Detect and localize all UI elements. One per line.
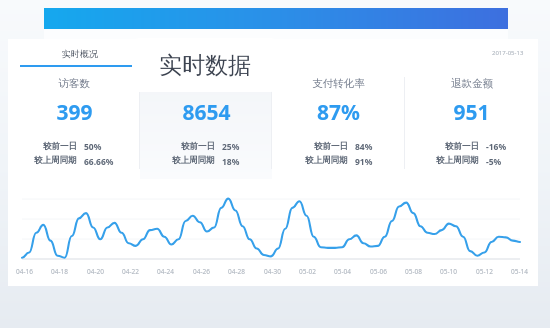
staticText: 04-30 [264,267,281,276]
staticText: 05-14 [511,267,528,276]
staticText: 经营概况 [233,49,261,58]
staticText: 66.66% [84,156,114,168]
staticText: 较前一日 [181,141,215,152]
staticText: 50% [84,141,102,153]
staticText: 较前一日 [445,141,479,152]
staticText: -5% [486,156,502,168]
staticText: 25% [222,141,240,153]
staticText: 04-28 [228,267,245,276]
staticText: 较上周同期 [436,155,479,166]
button[interactable]: 访客数 [8,67,140,179]
staticText: 支付转化率 [312,77,365,90]
staticText: 05-02 [299,267,316,276]
staticText: -16% [486,141,507,153]
button[interactable]: 实时数据 [132,38,278,92]
button[interactable]: 实时概况 [20,39,140,67]
staticText: 951 [453,98,490,127]
staticText: 退款金额 [451,77,493,90]
staticText: 05-06 [370,267,387,276]
staticText: 399 [56,98,93,127]
staticText: 04-24 [157,267,174,276]
staticText: 04-22 [122,267,139,276]
button[interactable]: 支付金额 [140,67,272,179]
staticText: 实时数据 [159,51,251,80]
staticText: 91% [355,156,373,168]
button[interactable]: 退款金额 [405,67,538,179]
staticText: 87% [317,98,360,127]
staticText: 较前一日 [314,141,348,152]
staticText: 84% [355,141,373,153]
staticText: 较前一日 [43,141,77,152]
staticText: 04-18 [51,267,68,276]
staticText: 访客数 [58,77,90,90]
staticText: 04-20 [87,267,104,276]
button[interactable]: 经营概况 [227,47,267,60]
button[interactable]: 支付转化率 [272,67,405,179]
staticText: 05-04 [334,267,351,276]
staticText: 18% [222,156,240,168]
staticText: 较上周同期 [34,155,77,166]
staticText: 较上周同期 [172,155,215,166]
staticText: 05-08 [405,267,422,276]
staticText: 8654 [182,98,231,127]
staticText: 04-16 [16,267,33,276]
staticText: 05-10 [440,267,457,276]
staticText: 05-12 [476,267,493,276]
staticText: 2017-05-13 [492,49,524,57]
staticText: 04-26 [193,267,210,276]
staticText: 较上周同期 [305,155,348,166]
staticText: 实时概况 [62,48,98,59]
